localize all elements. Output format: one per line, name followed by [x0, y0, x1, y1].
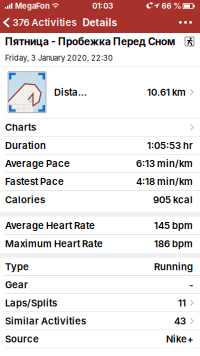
staticText: 4:18 min/km	[136, 176, 193, 187]
staticText: 1:05:53 hr	[147, 140, 193, 151]
staticText: Average Heart Rate	[5, 220, 95, 231]
button[interactable]: Similar Activities	[0, 312, 200, 330]
button[interactable]: More options	[174, 12, 200, 33]
staticText: Details	[82, 16, 117, 29]
staticText: Calories	[5, 194, 45, 205]
staticText: 10.61 km	[147, 86, 186, 98]
button[interactable]: Fastest Pace	[0, 173, 200, 191]
button[interactable]: Laps/Splits	[0, 294, 200, 312]
staticText: Maximum Heart Rate	[5, 238, 103, 249]
staticText: -	[189, 279, 193, 291]
staticText: Type	[5, 261, 29, 272]
button[interactable]: Dista...	[0, 66, 200, 118]
staticText: Average Pace	[5, 158, 70, 169]
button[interactable]: 376 Activities	[0, 12, 80, 33]
button[interactable]: Gear	[0, 276, 200, 294]
staticText: 905 kcal	[153, 194, 193, 205]
staticText: 01:03	[92, 1, 113, 11]
button[interactable]: Calories	[0, 191, 200, 209]
staticText: 43	[174, 315, 186, 327]
staticText: Charts	[5, 121, 36, 133]
button[interactable]: Average Pace	[0, 155, 200, 173]
staticText: Similar Activities	[5, 315, 86, 327]
button[interactable]: Source	[0, 330, 200, 348]
staticText: 6:13 min/km	[136, 158, 193, 169]
staticText: Пятница - Пробежка Перед Сном	[5, 35, 175, 48]
staticText: Laps/Splits	[5, 297, 57, 309]
staticText: Dista...	[54, 86, 87, 98]
staticText: Duration	[5, 140, 46, 151]
button[interactable]: Maximum Heart Rate	[0, 235, 200, 253]
button[interactable]: Duration	[0, 137, 200, 155]
staticText: Nike+	[166, 333, 193, 345]
button[interactable]: Average Heart Rate	[0, 217, 200, 235]
button[interactable]: Charts	[0, 118, 200, 137]
staticText: Fastest Pace	[5, 176, 64, 187]
staticText: 66 %	[161, 1, 181, 11]
staticText: 186 bpm	[154, 238, 193, 249]
staticText: 11	[178, 297, 186, 309]
button[interactable]: Type	[0, 258, 200, 276]
staticText: 145 bpm	[154, 220, 193, 231]
staticText: Source	[5, 333, 39, 345]
staticText: Gear	[5, 279, 28, 291]
staticText: 376 Activities	[12, 17, 76, 28]
staticText: Running	[154, 261, 193, 272]
staticText: MegaFon	[15, 1, 50, 11]
staticText: Friday, 3 January 2020, 22:30	[5, 53, 113, 62]
